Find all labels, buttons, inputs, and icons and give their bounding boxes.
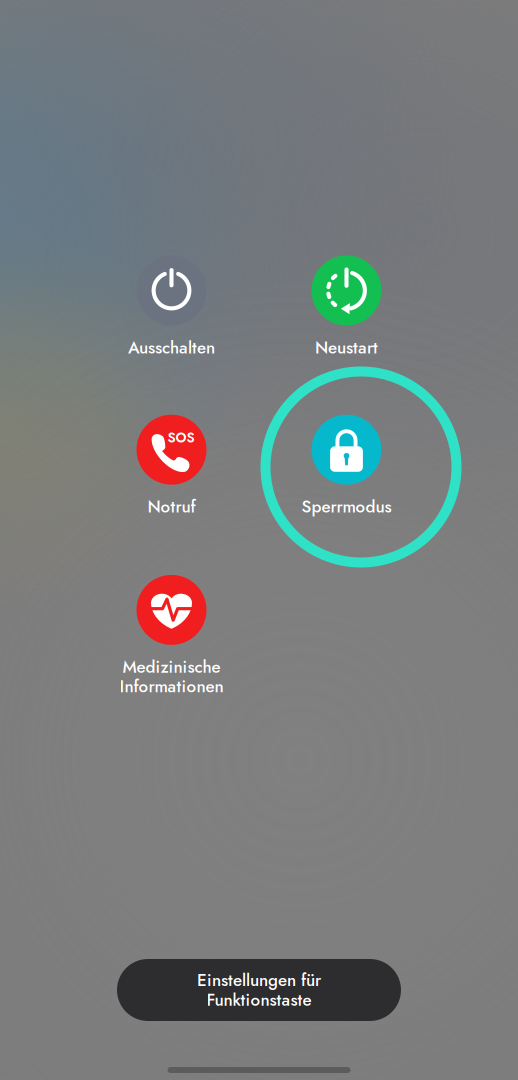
staticText: Neustart <box>315 335 378 360</box>
staticText: Medizinische <box>122 655 220 679</box>
button[interactable]: Einstellungen für <box>117 959 401 1021</box>
staticText: Informationen <box>119 674 223 699</box>
staticText: SOS <box>167 428 194 448</box>
button[interactable]: Sperrmodus <box>259 415 434 516</box>
button[interactable]: Medizinische Informationen <box>84 575 259 696</box>
staticText: Einstellungen für <box>197 968 321 992</box>
staticText: Notruf <box>147 494 195 519</box>
button[interactable]: Ausschalten <box>84 255 259 357</box>
button[interactable]: Notruf <box>84 415 259 516</box>
button[interactable]: Neustart <box>259 255 434 357</box>
staticText: Sperrmodus <box>301 494 391 519</box>
staticText: Funktionstaste <box>206 988 311 1012</box>
staticText: Ausschalten <box>128 335 215 360</box>
